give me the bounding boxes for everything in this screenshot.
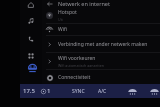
button[interactable]: Driver temperature — [21, 84, 37, 98]
staticText: 1 — [47, 87, 51, 95]
staticText: Wifi automatisch aanzetten — [58, 63, 105, 68]
button[interactable]: Back — [45, 0, 54, 7]
button[interactable]: Apps — [24, 51, 38, 60]
button[interactable]: SYNC — [67, 84, 89, 98]
staticText: 17.5 — [23, 87, 35, 95]
button[interactable]: Driver seat heater — [24, 60, 40, 74]
staticText: Connectiviteit — [58, 74, 91, 81]
staticText: Hotspot — [58, 9, 77, 16]
staticText: Wifi — [58, 26, 67, 33]
button[interactable]: Connectiviteit — [42, 70, 160, 84]
staticText: Wifi voorkeuren — [58, 55, 96, 62]
button[interactable]: Verbinding met ander netwerk maken — [42, 36, 160, 52]
button[interactable]: Rear defrost — [148, 84, 160, 98]
staticText: SYNC — [72, 88, 85, 95]
button[interactable]: Wifi — [42, 24, 160, 35]
button[interactable]: Wifi voorkeuren — [42, 53, 160, 69]
button[interactable]: Fan speed — [38, 84, 54, 98]
button[interactable]: Home — [24, 0, 38, 9]
button[interactable]: Hotspot — [42, 7, 160, 23]
staticText: Verbinding met ander netwerk maken — [58, 41, 148, 48]
button[interactable]: Media — [24, 16, 38, 25]
button[interactable]: Phone — [24, 34, 38, 43]
staticText: Uit — [58, 17, 63, 22]
button[interactable]: A/C — [93, 84, 111, 98]
staticText: A/C — [98, 88, 107, 95]
staticText: Netwerk en internet — [58, 0, 110, 7]
button[interactable]: Front defrost — [126, 84, 138, 98]
